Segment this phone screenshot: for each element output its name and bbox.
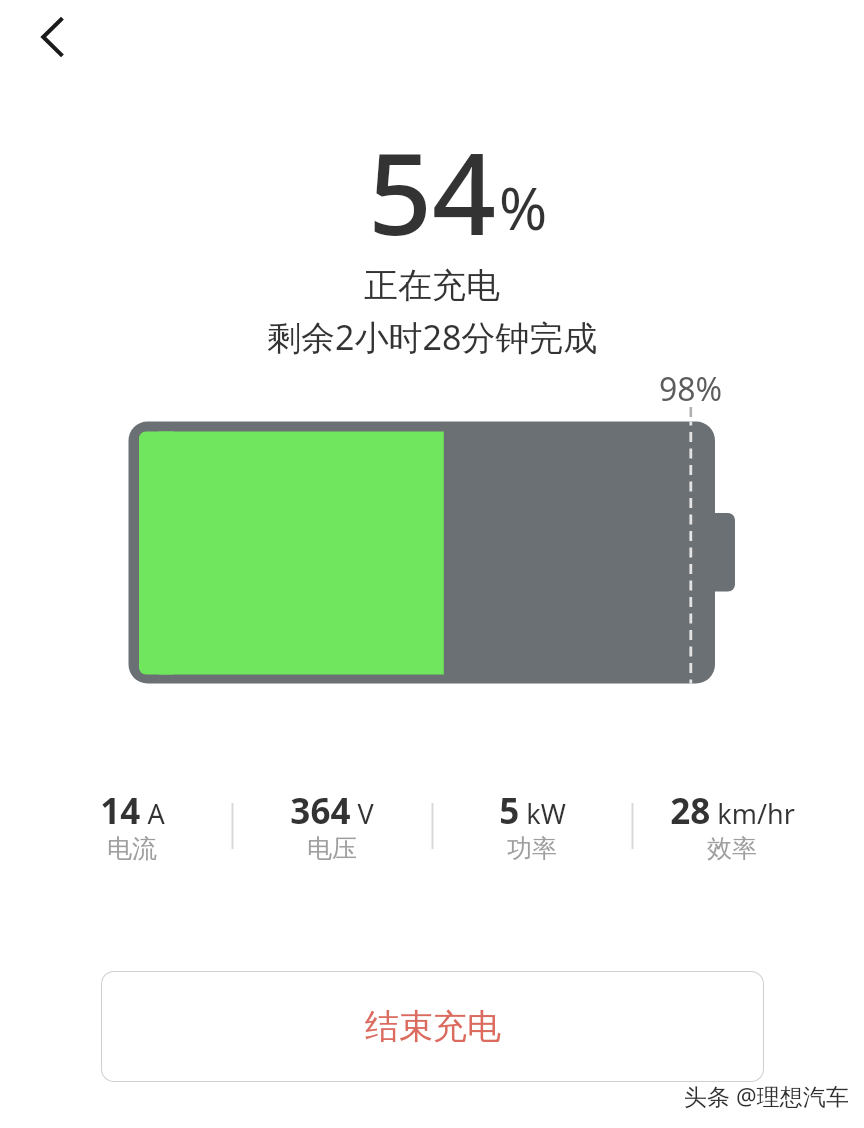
staticText: 剩余2小时28分钟完成 (267, 314, 598, 360)
button[interactable]: Back (10, 0, 90, 74)
staticText: 14 A (100, 787, 165, 835)
staticText: 28 km/hr (670, 787, 795, 835)
button[interactable]: 364 V (232, 782, 432, 878)
button[interactable]: 14 A (32, 782, 232, 878)
staticText: 364 V (290, 787, 374, 835)
button[interactable]: 28 km/hr (632, 782, 832, 878)
staticText: 功率 (507, 833, 557, 864)
staticText: 98% (659, 367, 723, 411)
staticText: 头条 @理想汽车 (684, 1080, 849, 1111)
staticText: 正在充电 (364, 264, 500, 307)
staticText: 电流 (107, 833, 157, 864)
staticText: 结束充电 (365, 1005, 501, 1048)
staticText: 5 kW (499, 787, 566, 835)
staticText: % (499, 168, 548, 247)
button[interactable]: 结束充电 (101, 971, 764, 1082)
staticText: 54 (368, 115, 497, 268)
staticText: 效率 (707, 833, 757, 864)
staticText: 电压 (307, 833, 357, 864)
button[interactable]: 5 kW (432, 782, 632, 878)
